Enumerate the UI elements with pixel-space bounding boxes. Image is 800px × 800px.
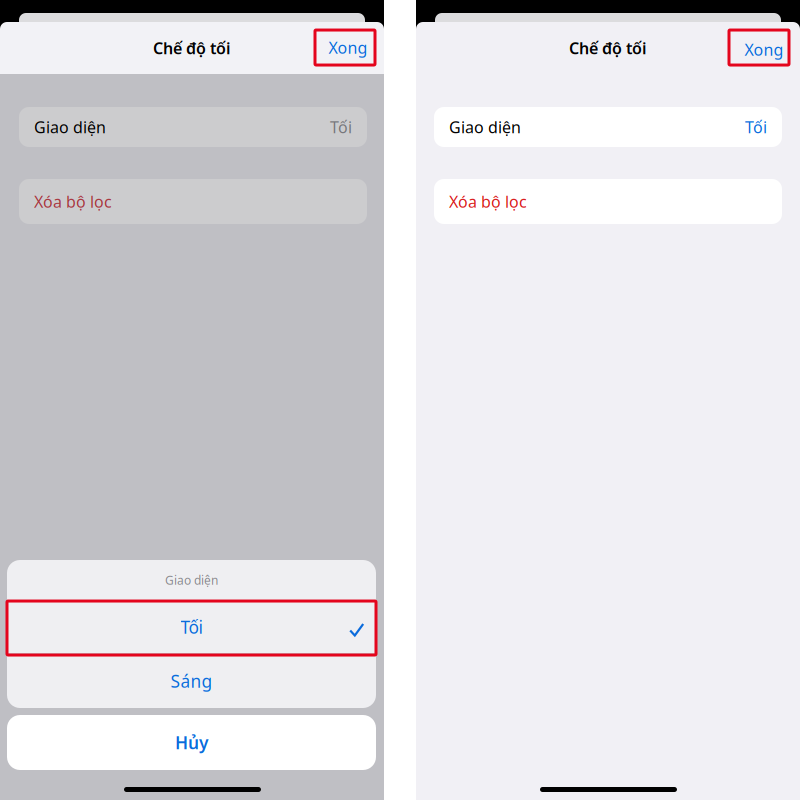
staticText: Hủy (175, 731, 208, 754)
staticText: Giao diện (449, 116, 521, 138)
staticText: Tối (745, 116, 767, 138)
staticText: Xóa bộ lọc (34, 191, 112, 212)
button[interactable]: Giao diện (434, 107, 782, 147)
staticText: Tối (330, 116, 352, 138)
staticText: Giao diện (34, 116, 106, 138)
button[interactable]: Xóa bộ lọc (434, 179, 782, 224)
button[interactable]: Hủy (7, 715, 376, 770)
staticText: Sáng (170, 669, 212, 692)
button[interactable]: Xong (734, 32, 794, 67)
staticText: Tối (180, 615, 202, 638)
staticText: Xóa bộ lọc (449, 191, 527, 212)
staticText: Xong (744, 39, 783, 60)
button[interactable]: Giao diện (19, 107, 367, 147)
staticText: Giao diện (165, 572, 218, 588)
button[interactable]: Xong (318, 30, 378, 65)
button[interactable]: Tối (7, 601, 376, 653)
staticText: Xong (328, 37, 367, 58)
button[interactable]: Xóa bộ lọc (19, 179, 367, 224)
staticText: Chế độ tối (153, 37, 231, 59)
staticText: Chế độ tối (569, 37, 647, 59)
button[interactable]: Sáng (7, 654, 376, 708)
